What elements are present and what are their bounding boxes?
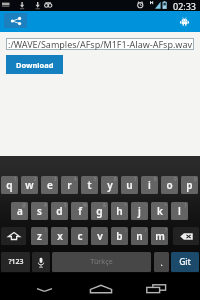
button[interactable]: 7 <box>121 176 138 194</box>
staticText: ? <box>165 227 167 233</box>
staticText: v <box>97 229 103 243</box>
staticText: Türkçe <box>90 257 113 267</box>
staticText: 7 <box>134 176 137 182</box>
staticText: l <box>178 204 181 218</box>
button[interactable]: 0 <box>181 176 198 194</box>
staticText: ?123 <box>8 257 24 267</box>
staticText: 02:33 <box>173 0 197 11</box>
button[interactable]: ; <box>111 227 128 245</box>
staticText: q <box>6 178 13 192</box>
staticText: z <box>37 229 42 243</box>
button[interactable]: $ <box>51 202 68 220</box>
button[interactable]: Back <box>22 273 66 300</box>
button[interactable]: : <box>91 227 108 245</box>
button[interactable]: Recent apps <box>134 273 178 300</box>
staticText: r <box>67 178 72 192</box>
button[interactable]: + <box>151 202 168 220</box>
staticText: ' <box>85 227 87 233</box>
staticText: : <box>105 227 107 233</box>
staticText: 2 <box>34 176 37 182</box>
staticText: 1 <box>14 176 17 182</box>
staticText: 5 <box>94 176 97 182</box>
staticText: @ <box>22 202 27 208</box>
button[interactable]: " <box>51 227 68 245</box>
button[interactable]: ? <box>151 227 168 245</box>
button[interactable]: % <box>71 202 88 220</box>
staticText: 9 <box>174 176 177 182</box>
staticText: ; <box>125 227 127 233</box>
staticText: a <box>17 204 23 218</box>
button[interactable]: * <box>111 202 128 220</box>
button[interactable]: ! <box>31 227 48 245</box>
button[interactable]: 1 <box>1 176 18 194</box>
staticText: t <box>87 178 92 192</box>
staticText: k <box>157 204 163 218</box>
staticText: y <box>107 178 113 192</box>
button[interactable]: 6 <box>101 176 118 194</box>
staticText: ( <box>185 202 187 208</box>
staticText: - <box>145 202 147 208</box>
button[interactable]: ?123 <box>1 252 30 272</box>
button[interactable]: # <box>31 202 48 220</box>
button[interactable]: 9 <box>161 176 178 194</box>
staticText: $ <box>64 202 67 208</box>
staticText: m <box>155 229 165 243</box>
staticText: + <box>164 202 167 208</box>
staticText: 0 <box>194 176 197 182</box>
staticText: / <box>145 227 147 233</box>
staticText: % <box>83 202 87 208</box>
button[interactable]: 2 <box>21 176 38 194</box>
button[interactable]: . <box>154 252 169 272</box>
staticText: 4 <box>74 176 77 182</box>
staticText: f <box>78 204 82 218</box>
button[interactable]: @ <box>11 202 28 220</box>
button[interactable]: Home <box>79 273 123 300</box>
staticText: ! <box>45 227 47 233</box>
staticText: :/WAVE/Samples/AFsp/M1F1-Alaw-AFsp.wav <box>8 38 193 50</box>
button[interactable]: 8 <box>141 176 158 194</box>
button[interactable]: Git <box>171 252 199 272</box>
staticText: o <box>166 178 173 192</box>
button[interactable]: Share <box>4 13 27 28</box>
staticText: c <box>77 229 83 243</box>
staticText: u <box>126 178 133 192</box>
staticText: s <box>37 204 42 218</box>
button[interactable]: Voice input <box>32 252 50 272</box>
staticText: 3 <box>54 176 57 182</box>
staticText: " <box>65 227 67 233</box>
button[interactable]: ' <box>71 227 88 245</box>
staticText: g <box>96 204 103 218</box>
button[interactable]: 4 <box>61 176 78 194</box>
button[interactable]: :/WAVE/Samples/AFsp/M1F1-Alaw-AFsp.wav <box>6 38 194 50</box>
button[interactable]: ( <box>171 202 188 220</box>
staticText: & <box>103 202 107 208</box>
staticText: d <box>56 204 63 218</box>
button[interactable]: App icon <box>176 13 192 29</box>
button[interactable]: - <box>131 202 148 220</box>
staticText: 6 <box>114 176 117 182</box>
button[interactable]: Download <box>6 55 63 74</box>
button[interactable]: 5 <box>81 176 98 194</box>
staticText: e <box>47 178 53 192</box>
staticText: # <box>44 202 47 208</box>
staticText: x <box>57 229 63 243</box>
staticText: n <box>136 229 143 243</box>
staticText: i <box>148 178 151 192</box>
staticText: 8 <box>154 176 157 182</box>
button[interactable]: & <box>91 202 108 220</box>
button[interactable]: Backspace <box>173 227 199 245</box>
button[interactable]: 3 <box>41 176 58 194</box>
staticText: w <box>25 178 34 192</box>
staticText: h <box>116 204 123 218</box>
staticText: j <box>138 204 141 218</box>
staticText: b <box>116 229 123 243</box>
staticText: . <box>160 257 163 268</box>
button[interactable]: Türkçe <box>52 252 151 272</box>
button[interactable]: Shift <box>1 227 26 245</box>
staticText: Download <box>16 60 54 70</box>
staticText: p <box>186 178 193 192</box>
staticText: * <box>124 202 127 208</box>
button[interactable]: / <box>131 227 148 245</box>
staticText: Git <box>179 256 191 268</box>
